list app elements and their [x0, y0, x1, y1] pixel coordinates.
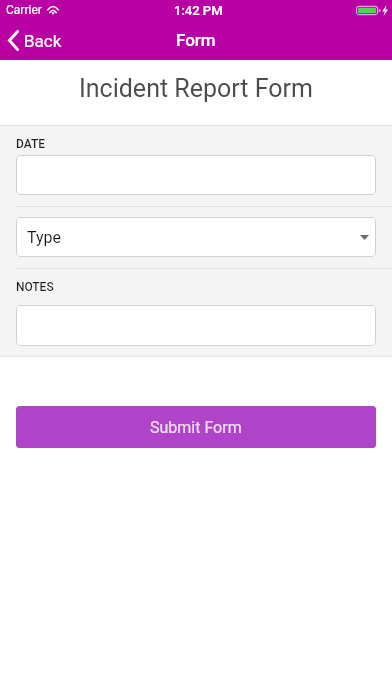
- other: Open type picker: [360, 235, 369, 240]
- button[interactable]: Submit Form: [16, 406, 376, 448]
- staticText: 1:42 PM: [174, 3, 223, 18]
- staticText: Incident Report Form: [79, 74, 313, 103]
- button[interactable]: Text field: [16, 305, 376, 346]
- staticText: NOTES: [16, 280, 54, 294]
- staticText: DATE: [16, 137, 46, 151]
- button[interactable]: Back: [0, 24, 72, 57]
- staticText: Form: [176, 30, 216, 50]
- staticText: Type: [27, 228, 62, 247]
- button[interactable]: Type: [16, 217, 376, 257]
- button[interactable]: Text field: [16, 155, 376, 195]
- staticText: Carrier: [6, 3, 42, 17]
- staticText: Submit Form: [150, 418, 242, 437]
- other: Back: [8, 30, 19, 51]
- other: Wi-Fi: [47, 6, 59, 15]
- other: Battery charging: [356, 4, 389, 17]
- staticText: Back: [24, 31, 62, 51]
